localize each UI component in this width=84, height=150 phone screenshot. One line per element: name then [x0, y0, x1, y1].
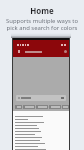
staticText: Supports multiple ways to pick and searc… — [6, 17, 78, 32]
staticText: Home — [30, 6, 54, 17]
